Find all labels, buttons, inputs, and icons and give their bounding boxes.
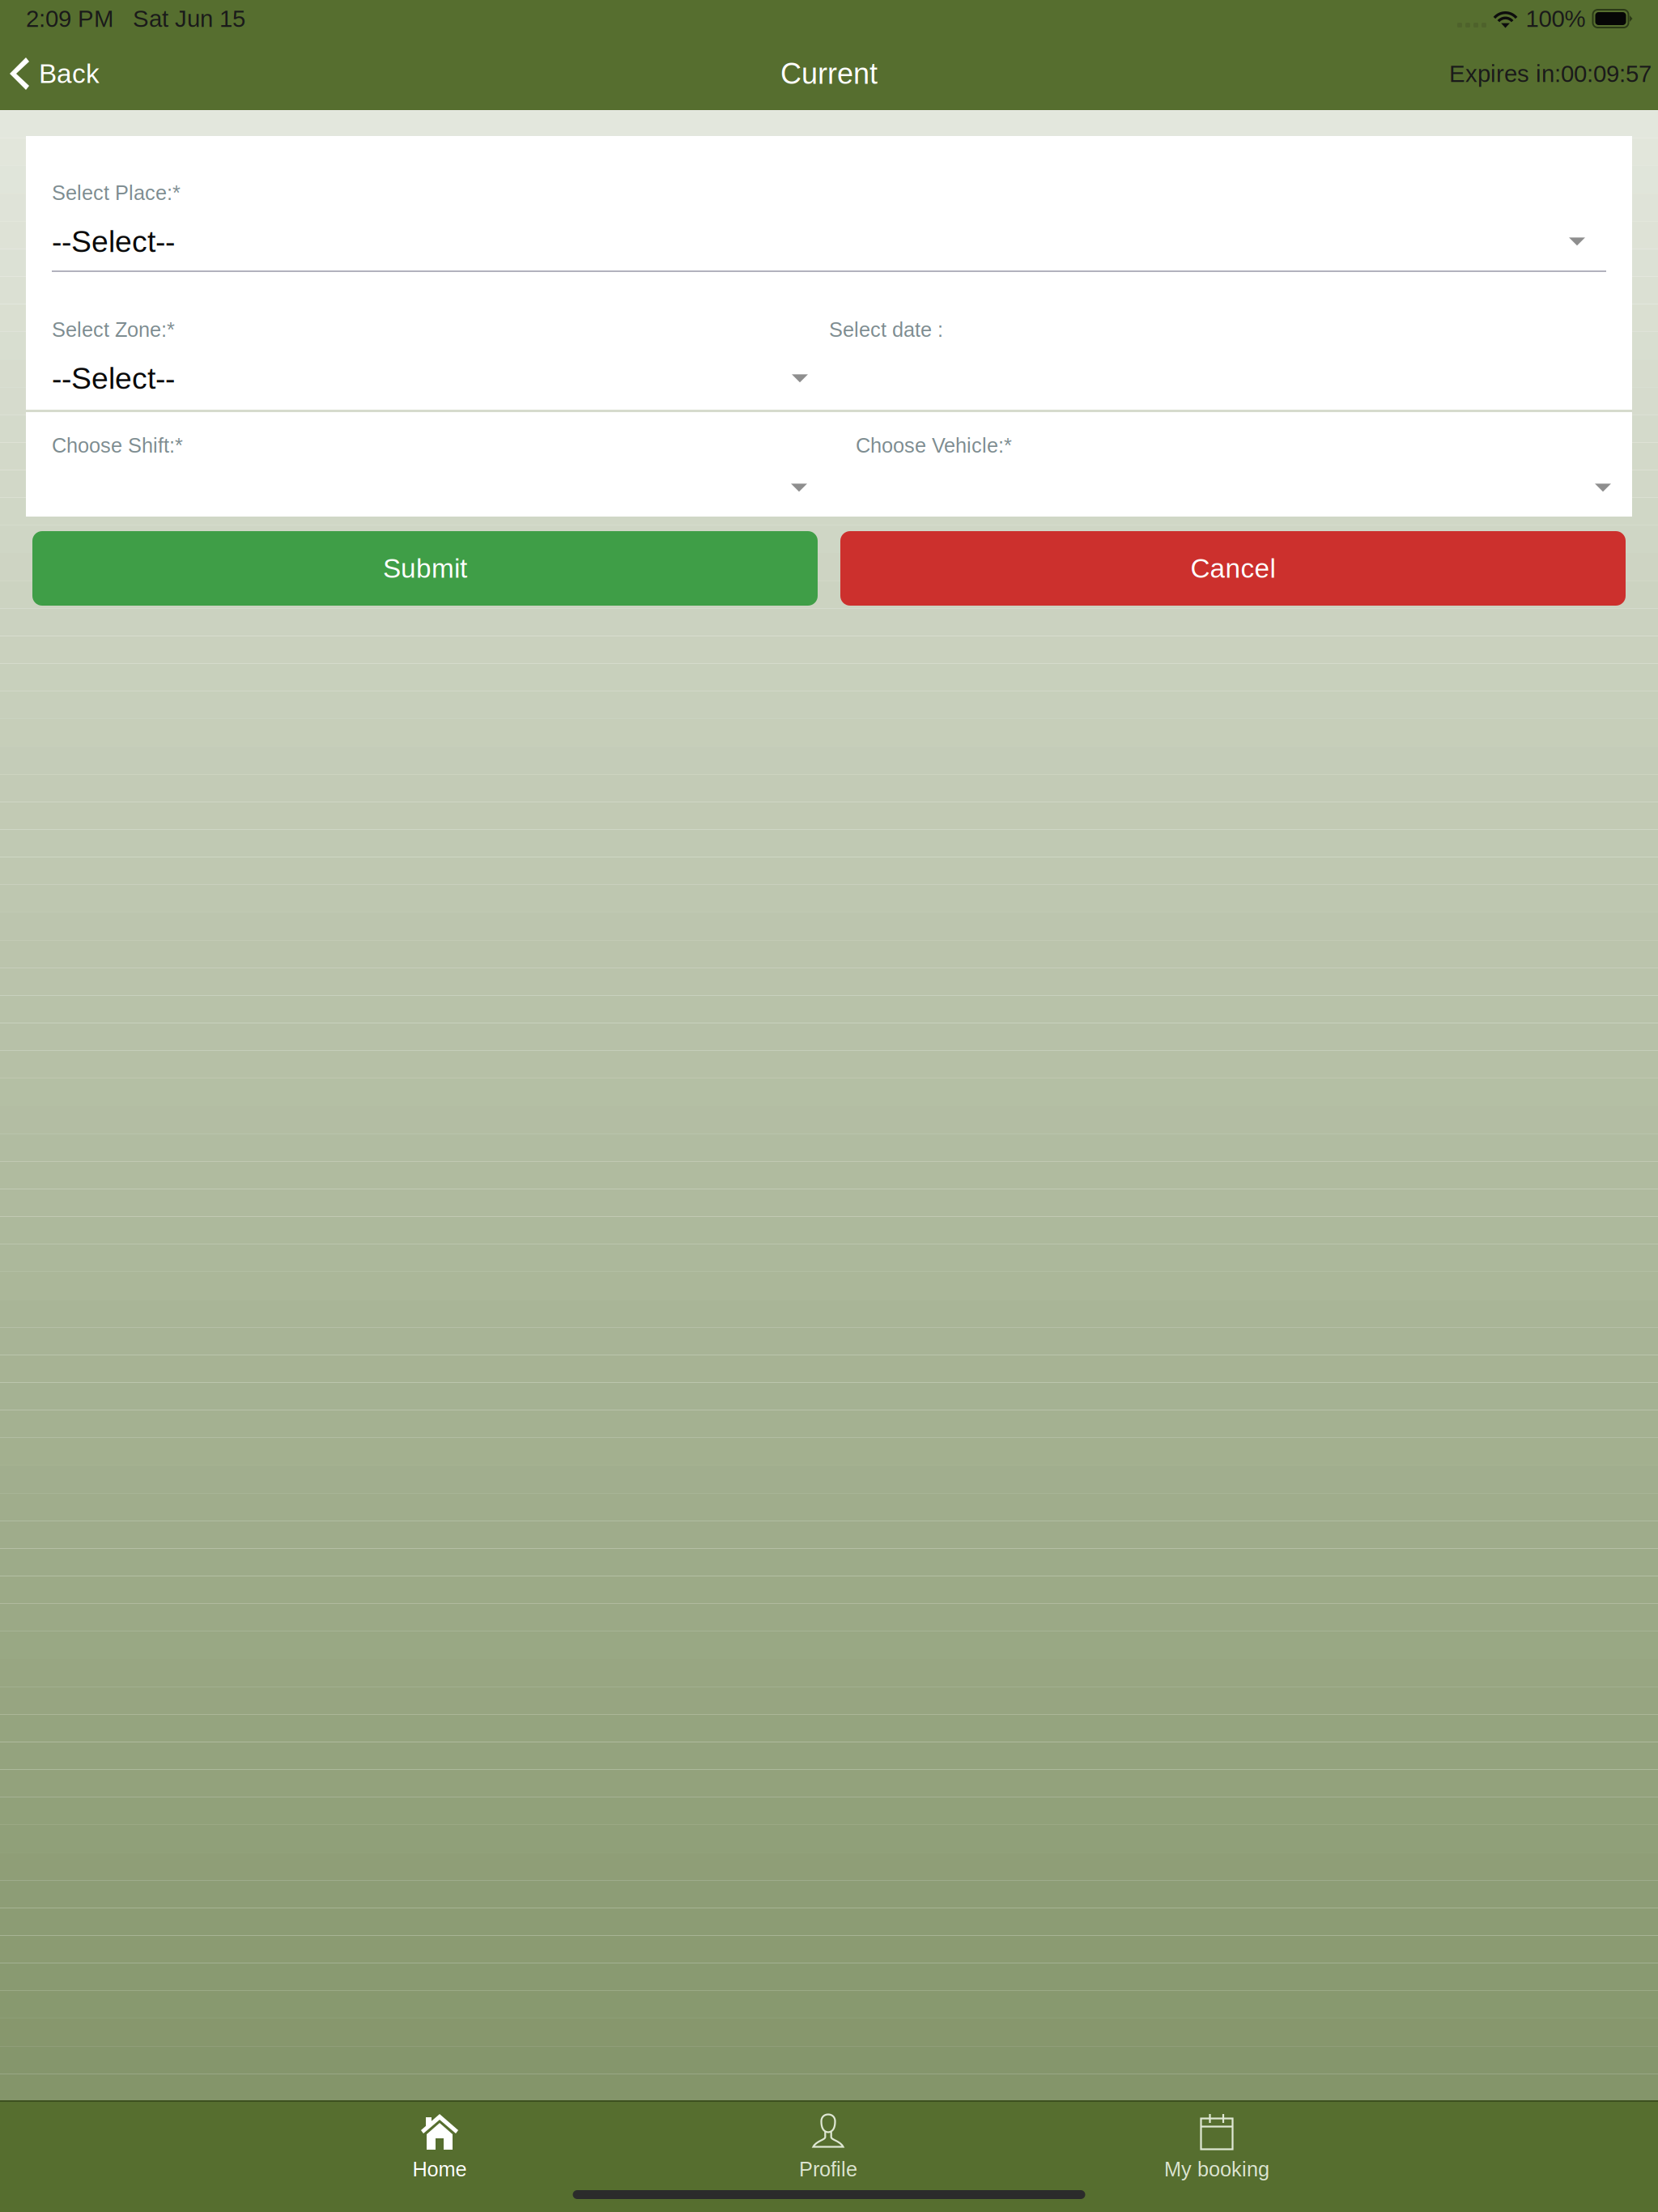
staticText: Choose Vehicle:* [856,434,1012,457]
staticText: Back [39,59,100,89]
staticText: Select date : [829,318,943,341]
staticText: 2:09 PM [26,5,113,32]
staticText: Home [412,2158,467,2181]
staticText: Select Zone:* [52,318,175,341]
staticText: --Select-- [52,361,175,395]
button[interactable]: Submit [32,531,818,606]
staticText: Submit [383,553,467,583]
staticText: My booking [1164,2158,1269,2181]
staticText: Profile [799,2158,857,2181]
staticText: Select Place:* [52,181,181,204]
staticText: --Select-- [52,225,175,258]
staticText: Choose Shift:* [52,434,183,457]
staticText: Current [780,57,878,90]
button[interactable]: Back [0,48,100,100]
staticText: Expires in:00:09:57 [1449,60,1652,87]
button[interactable]: Home [245,2100,634,2212]
staticText: Sat Jun 15 [113,5,245,32]
staticText: 100% [1526,5,1586,32]
staticText: Cancel [1190,553,1275,583]
button[interactable]: Profile [634,2100,1022,2212]
button[interactable]: My booking [1022,2100,1411,2212]
button[interactable]: Cancel [840,531,1626,606]
